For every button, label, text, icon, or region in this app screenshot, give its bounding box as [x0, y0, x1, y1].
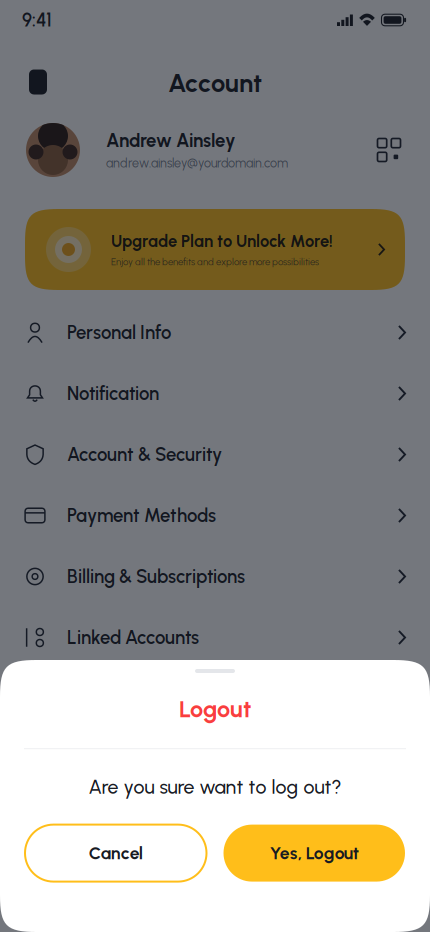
button[interactable]: App Appearance: [0, 668, 430, 729]
staticText: Andrew Ainsley: [106, 129, 236, 152]
staticText: Account: [168, 68, 262, 98]
staticText: Yes, Logout: [270, 843, 359, 864]
staticText: Logout: [179, 695, 251, 723]
button[interactable]: Scan QR code: [370, 131, 408, 169]
staticText: andrew.ainsley@yourdomain.com: [106, 156, 288, 171]
button[interactable]: Back: [21, 57, 55, 95]
staticText: Linked Accounts: [67, 626, 199, 649]
button[interactable]: Personal Info: [0, 302, 430, 363]
button[interactable]: Notification: [0, 363, 430, 424]
staticText: Billing & Subscriptions: [67, 565, 245, 588]
button[interactable]: Billing & Subscriptions: [0, 546, 430, 607]
staticText: App Appearance: [67, 687, 208, 710]
staticText: Notification: [67, 382, 159, 405]
button[interactable]: Yes, Logout: [223, 825, 405, 882]
staticText: Account & Security: [67, 443, 222, 466]
button[interactable]: Account & Security: [0, 424, 430, 485]
button[interactable]: Linked Accounts: [0, 607, 430, 668]
staticText: Are you sure want to log out?: [88, 775, 341, 799]
staticText: Cancel: [89, 843, 143, 864]
staticText: Payment Methods: [67, 504, 216, 527]
staticText: Upgrade Plan to Unlock More!: [111, 231, 333, 251]
staticText: Enjoy all the benefits and explore more …: [111, 256, 319, 268]
staticText: Personal Info: [67, 321, 171, 344]
button[interactable]: Cancel: [25, 825, 206, 882]
button[interactable]: Payment Methods: [0, 485, 430, 546]
button[interactable]: Upgrade Plan to Unlock More!: [25, 209, 405, 290]
button[interactable]: Data & Analytics: [0, 729, 430, 790]
staticText: 9:41: [22, 9, 52, 31]
